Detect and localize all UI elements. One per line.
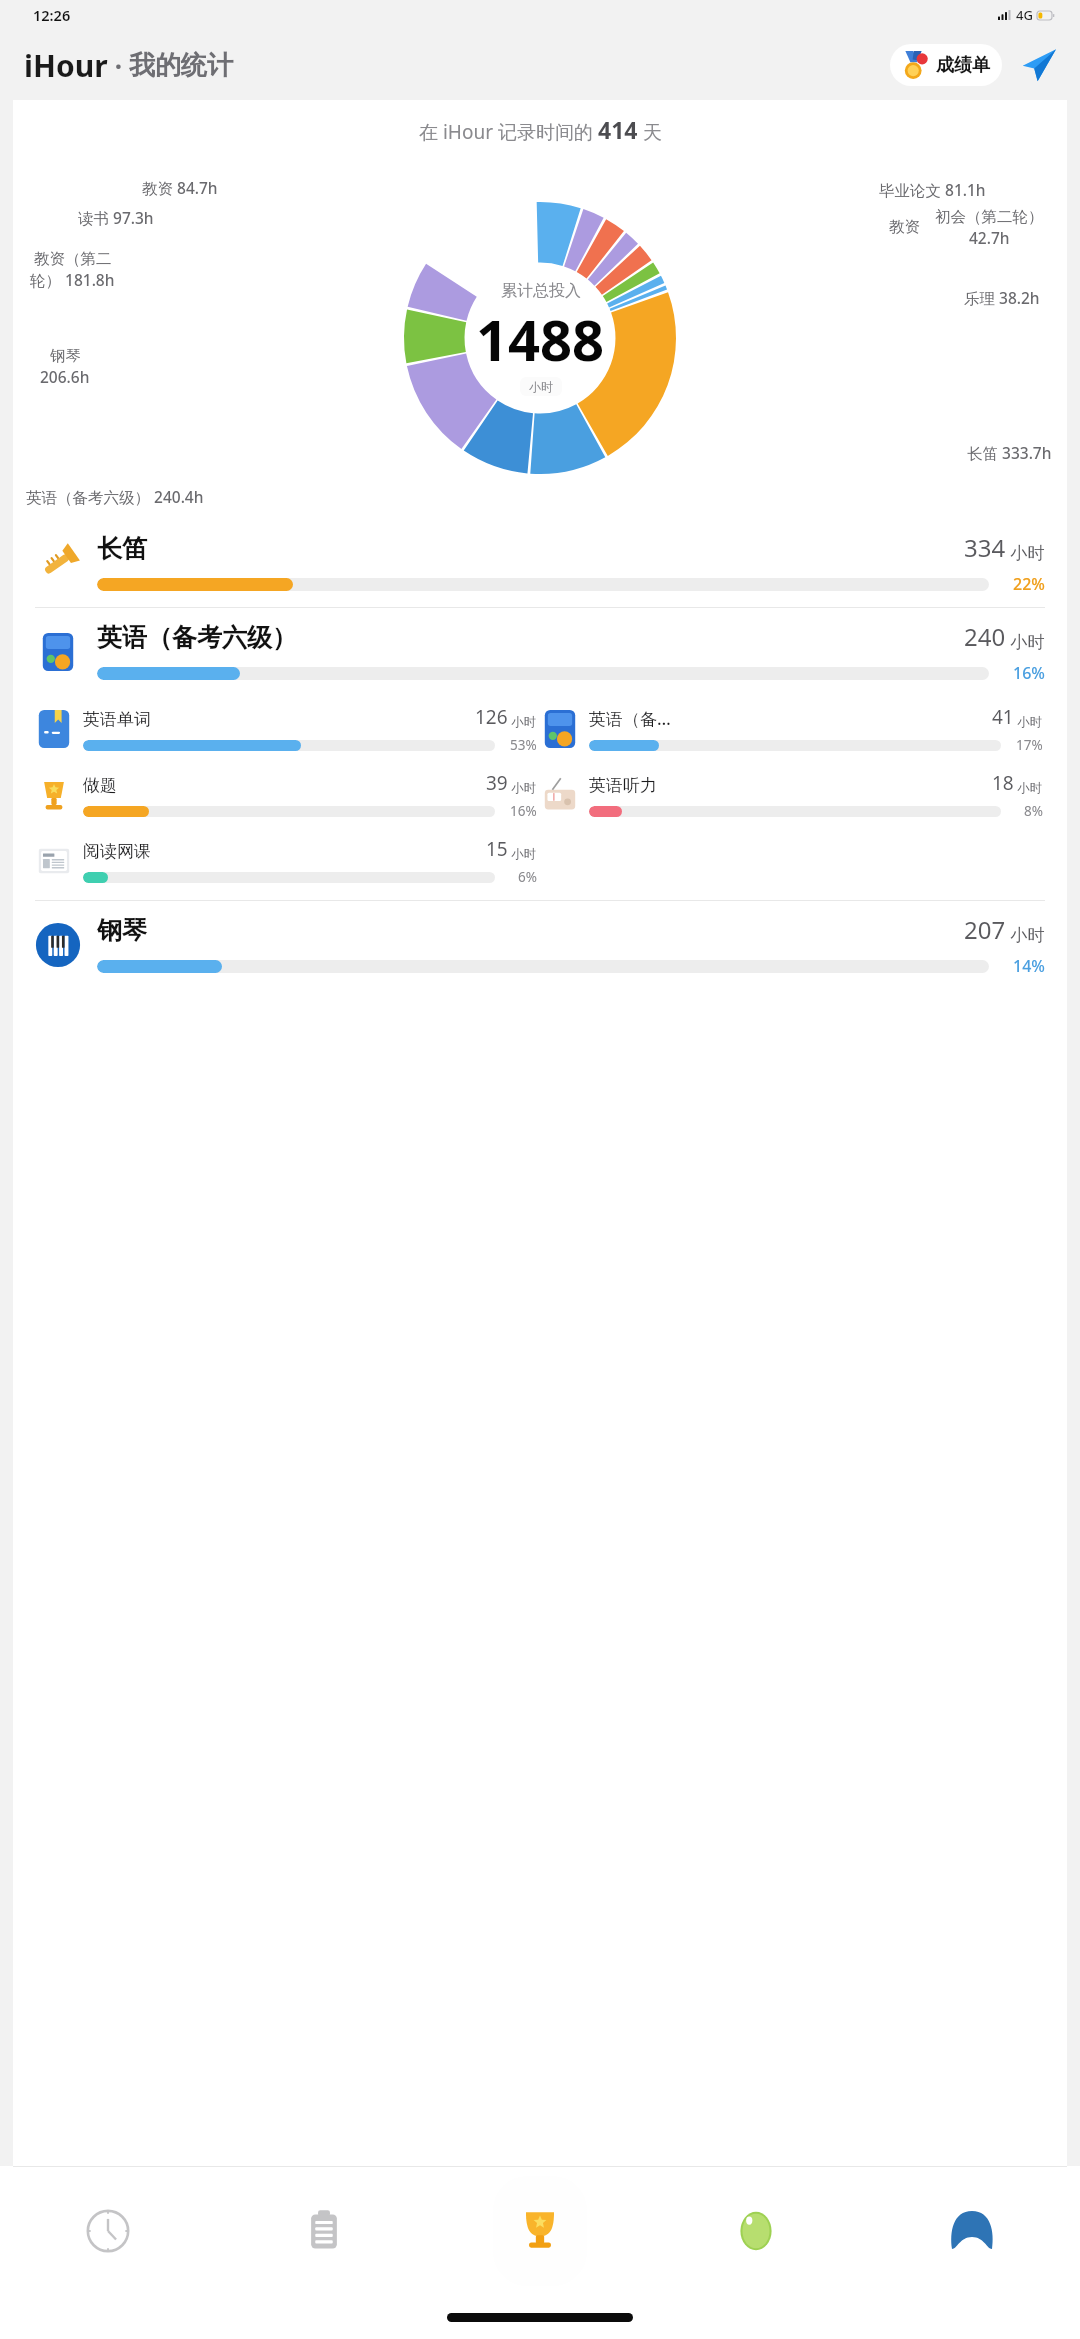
staticText: 乐理 38.2h (964, 287, 1040, 308)
button[interactable]: Share (1016, 42, 1062, 88)
button[interactable]: Profile (864, 2167, 1080, 2295)
staticText: 8% (1024, 802, 1043, 820)
staticText: 42.7h (969, 227, 1010, 248)
button[interactable]: 英语听力 (539, 762, 1045, 828)
staticText: iHour (24, 45, 108, 86)
staticText: 小时 (1014, 779, 1043, 796)
staticText: 长笛 (97, 533, 147, 564)
staticText: 小时 (508, 779, 537, 796)
staticText: 在 iHour 记录时间的 (419, 119, 598, 145)
staticText: 小时 (1014, 713, 1043, 730)
staticText: 英语单词 (83, 709, 151, 730)
staticText: 教资 (889, 217, 920, 237)
staticText: 18 (992, 770, 1014, 796)
staticText: 小时 (1006, 923, 1045, 946)
staticText: 14% (1013, 955, 1045, 977)
staticText: 天 (638, 119, 662, 145)
staticText: 英语（备考六级） 240.4h (26, 486, 204, 507)
staticText: 240 (964, 620, 1006, 653)
staticText: 毕业论文 81.1h (879, 179, 986, 200)
button[interactable]: 长笛 (13, 519, 1067, 607)
staticText: 12:26 (33, 5, 71, 25)
button[interactable]: 阅读网课 (33, 828, 539, 894)
staticText: 教资 84.7h (142, 177, 218, 198)
staticText: 轮） 181.8h (30, 269, 115, 290)
button[interactable]: 成绩单 (890, 44, 1002, 86)
button[interactable]: 英语单词 (33, 696, 539, 762)
staticText: 英语（备… (589, 707, 671, 730)
staticText: 小时 (1006, 541, 1045, 564)
staticText: 读书 97.3h (78, 207, 154, 228)
staticText: 126 (475, 704, 508, 730)
staticText: 我的统计 (129, 49, 233, 82)
staticText: 小时 (529, 379, 553, 394)
staticText: 累计总投入 (501, 281, 581, 301)
button[interactable]: Timer (0, 2167, 216, 2295)
button[interactable]: 英语（备… (539, 696, 1045, 762)
button[interactable]: Garden (648, 2167, 864, 2295)
staticText: 16% (510, 802, 537, 820)
button[interactable]: Records (216, 2167, 432, 2295)
staticText: 15 (486, 836, 508, 862)
button[interactable]: 做题 (33, 762, 539, 828)
staticText: 教资（第二 (34, 249, 112, 269)
button[interactable]: 钢琴 (13, 901, 1067, 989)
staticText: 英语（备考六级） (97, 622, 297, 653)
staticText: 334 (964, 531, 1006, 564)
staticText: 小时 (508, 845, 537, 862)
staticText: 6% (518, 868, 537, 886)
staticText: 英语听力 (589, 775, 657, 796)
staticText: 53% (510, 736, 537, 754)
staticText: 钢琴 (50, 346, 81, 366)
button[interactable]: 英语（备考六级） (13, 608, 1067, 696)
staticText: 207 (964, 913, 1006, 946)
staticText: 长笛 333.7h (967, 442, 1052, 463)
staticText: 22% (1013, 573, 1045, 595)
staticText: 4G (1016, 6, 1033, 24)
staticText: 17% (1016, 736, 1043, 754)
staticText: 41 (992, 704, 1014, 730)
staticText: 206.6h (40, 366, 90, 387)
staticText: 做题 (83, 775, 117, 796)
staticText: 39 (486, 770, 508, 796)
staticText: 小时 (508, 713, 537, 730)
staticText: 1488 (476, 301, 605, 377)
staticText: 初会（第二轮） (935, 207, 1044, 227)
staticText: · (108, 48, 129, 83)
staticText: 成绩单 (936, 54, 990, 77)
button[interactable]: Statistics (493, 2176, 587, 2286)
staticText: 414 (598, 114, 638, 145)
staticText: 钢琴 (97, 915, 147, 946)
staticText: 阅读网课 (83, 841, 151, 862)
staticText: 小时 (1006, 630, 1045, 653)
staticText: 16% (1013, 662, 1045, 684)
